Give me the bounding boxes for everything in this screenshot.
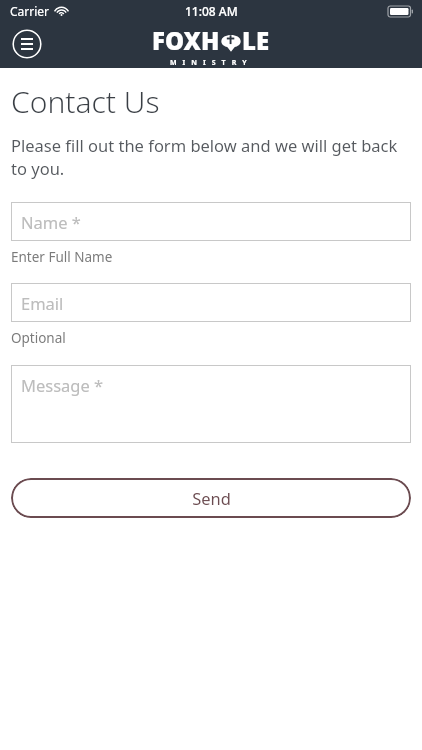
button[interactable]: Message * (11, 365, 411, 443)
staticText: Optional (11, 329, 66, 347)
staticText: Contact Us (11, 81, 160, 122)
button[interactable]: Send (11, 478, 411, 518)
staticText: Name * (21, 211, 81, 233)
staticText: 11:08 AM (185, 3, 238, 19)
staticText: LE (242, 24, 270, 57)
button[interactable]: Open navigation menu (12, 29, 42, 59)
button[interactable]: Email (11, 283, 411, 322)
staticText: MINISTRY (170, 58, 253, 68)
staticText: Please fill out the form below and we wi… (11, 134, 411, 180)
staticText: FOXH (152, 24, 220, 57)
staticText: Enter Full Name (11, 248, 113, 266)
staticText: Carrier (10, 3, 50, 19)
button[interactable]: Foxhole Ministry home (152, 24, 270, 68)
staticText: Send (192, 487, 231, 509)
staticText: Email (21, 292, 64, 314)
button[interactable]: Name * (11, 202, 411, 241)
staticText: Message * (21, 374, 104, 396)
